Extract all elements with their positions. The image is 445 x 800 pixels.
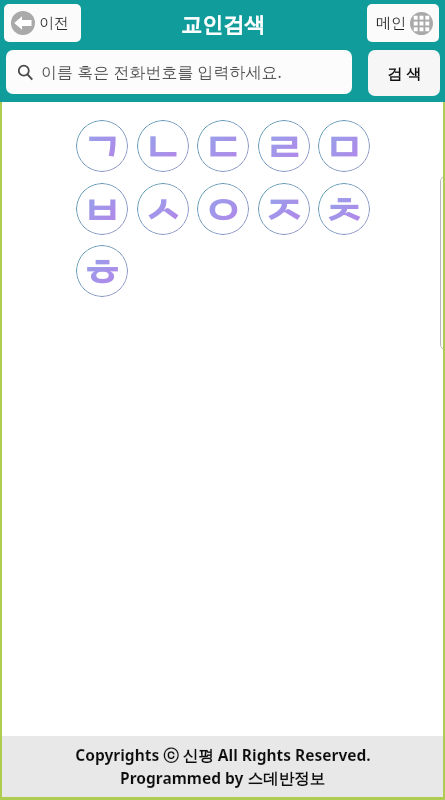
button[interactable]: ㅊ xyxy=(318,183,370,235)
staticText: Copyrights ⓒ 신평 All Rights Reserved. xyxy=(75,744,371,765)
button[interactable]: ㄱ xyxy=(76,120,128,172)
staticText: ㅅ xyxy=(144,183,183,229)
staticText: 교인검색 xyxy=(181,12,265,38)
staticText: ㄹ xyxy=(265,120,304,166)
staticText: 메인 xyxy=(376,14,406,33)
staticText: ㄱ xyxy=(83,120,122,166)
button[interactable]: 뒤로 xyxy=(4,4,81,42)
button[interactable]: ㅁ xyxy=(318,120,370,172)
staticText: Programmed by 스데반정보 xyxy=(120,767,325,788)
button[interactable]: ㄷ xyxy=(197,120,249,172)
staticText: 이전 xyxy=(39,14,69,33)
staticText: ㄷ xyxy=(204,120,243,166)
other: 메인 메뉴 xyxy=(410,12,433,35)
button[interactable]: 검 색 xyxy=(368,50,440,96)
staticText: ㅁ xyxy=(325,120,364,166)
button[interactable]: ㅂ xyxy=(76,183,128,235)
staticText: ㅇ xyxy=(204,183,243,229)
button[interactable]: ㄹ xyxy=(258,120,310,172)
staticText: 이름 혹은 전화번호를 입력하세요. xyxy=(41,61,282,83)
button[interactable]: 메인 xyxy=(367,4,439,42)
button[interactable]: ㅅ xyxy=(137,183,189,235)
button[interactable]: ㅎ xyxy=(76,245,128,297)
button[interactable]: ㅈ xyxy=(258,183,310,235)
button[interactable]: ㅇ xyxy=(197,183,249,235)
button[interactable]: ㄴ xyxy=(137,120,189,172)
staticText: ㅎ xyxy=(83,245,122,291)
staticText: 검 색 xyxy=(387,63,421,83)
staticText: ㄴ xyxy=(144,120,183,166)
other: 뒤로 xyxy=(11,11,35,35)
staticText: ㅊ xyxy=(325,183,364,229)
staticText: ㅂ xyxy=(83,183,122,229)
button[interactable]: 이름 혹은 전화번호를 입력하세요. xyxy=(6,50,352,94)
staticText: ㅈ xyxy=(265,183,304,229)
